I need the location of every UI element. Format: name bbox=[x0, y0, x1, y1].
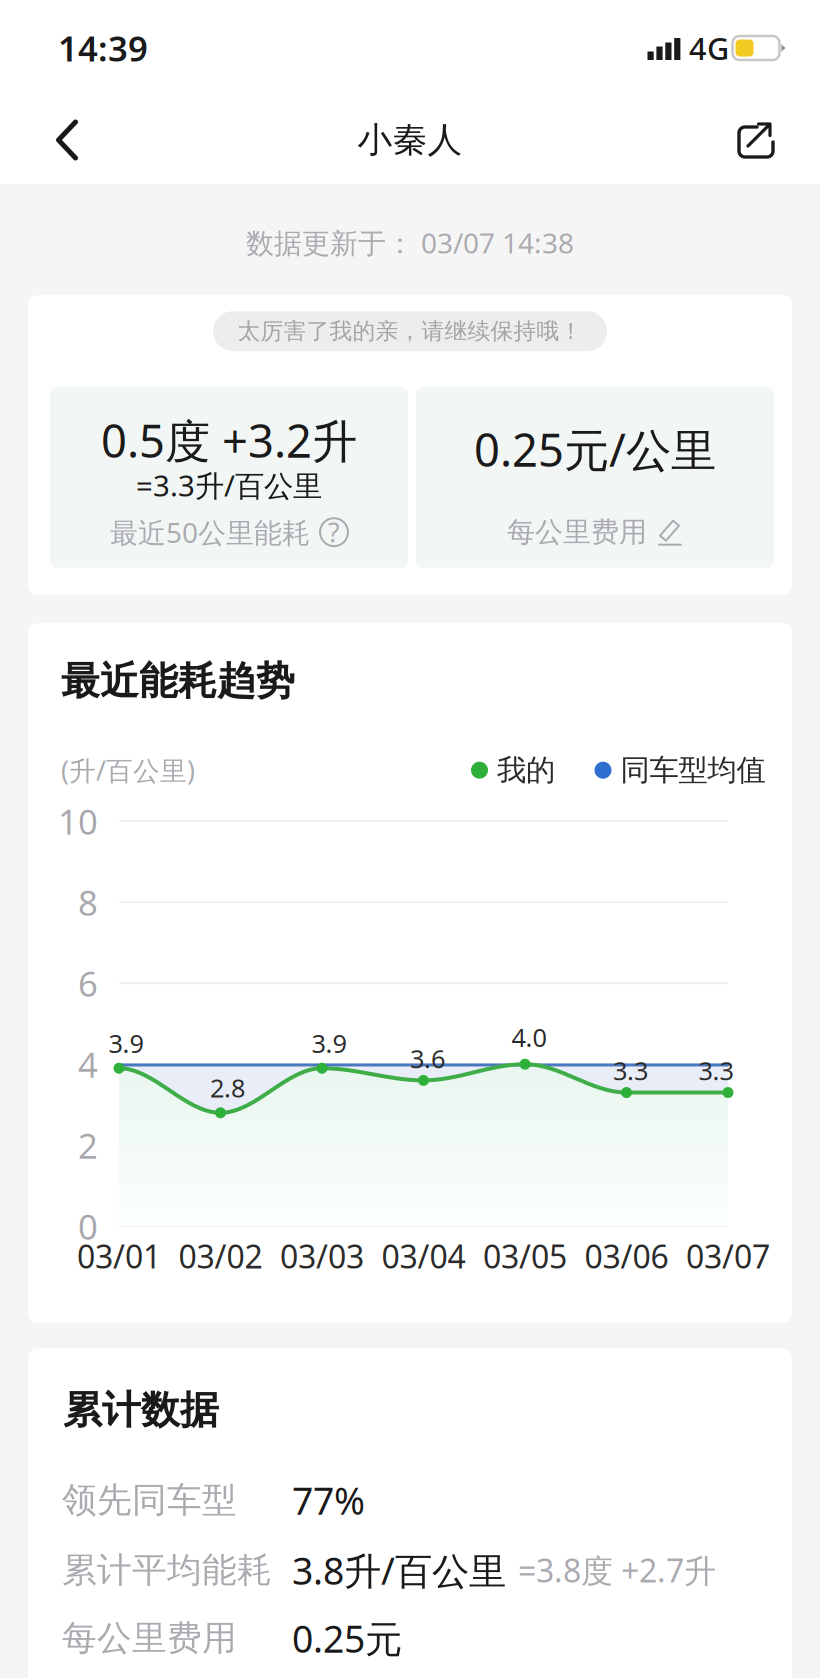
staticText: 2 bbox=[78, 1122, 98, 1168]
staticText: =3.3升/百公里 bbox=[136, 466, 322, 505]
button[interactable]: Share bbox=[0, 96, 820, 184]
staticText: 0 bbox=[78, 1203, 98, 1249]
staticText: 3.9 bbox=[108, 1026, 143, 1060]
staticText: 8 bbox=[78, 879, 98, 925]
staticText: 最近能耗趋势 bbox=[61, 657, 295, 705]
staticText: 03/07 bbox=[686, 1235, 770, 1277]
staticText: 03/01 bbox=[77, 1235, 161, 1277]
staticText: 03/04 bbox=[381, 1235, 465, 1277]
staticText: 10 bbox=[58, 798, 98, 844]
staticText: 0.5度 +3.2升 bbox=[101, 410, 357, 470]
staticText: =3.8度 +2.7升 bbox=[518, 1549, 716, 1591]
staticText: 3.9 bbox=[311, 1026, 346, 1060]
staticText: 3.8升/百公里 bbox=[292, 1545, 506, 1595]
staticText: 3.3 bbox=[613, 1054, 648, 1087]
staticText: 03/03 bbox=[280, 1235, 364, 1277]
staticText: 4.0 bbox=[511, 1020, 546, 1054]
staticText: (升/百公里) bbox=[61, 752, 195, 788]
staticText: 累计数据 bbox=[63, 1386, 219, 1434]
staticText: 最近50公里能耗 bbox=[110, 514, 310, 551]
staticText: 03/06 bbox=[584, 1235, 668, 1277]
staticText: 4G bbox=[689, 28, 729, 68]
button[interactable]: Back bbox=[0, 96, 820, 184]
staticText: ? bbox=[328, 514, 340, 550]
staticText: 0.25元/公里 bbox=[474, 419, 716, 479]
staticText: 太厉害了我的亲，请继续保持哦！ bbox=[237, 317, 582, 345]
staticText: 14:39 bbox=[58, 25, 148, 71]
staticText: 我的 bbox=[497, 752, 555, 788]
staticText: 累计平均能耗 bbox=[62, 1549, 272, 1591]
staticText: 小秦人 bbox=[357, 119, 462, 161]
staticText: 每公里费用 bbox=[62, 1617, 237, 1659]
staticText: 每公里费用 bbox=[507, 515, 647, 549]
staticText: 3.3 bbox=[698, 1054, 733, 1087]
staticText: 03/02 bbox=[178, 1235, 262, 1277]
staticText: 0.25元 bbox=[292, 1613, 402, 1663]
staticText: 4 bbox=[78, 1041, 98, 1087]
staticText: 2.8 bbox=[210, 1071, 245, 1105]
staticText: 领先同车型 bbox=[62, 1479, 237, 1521]
staticText: 6 bbox=[78, 960, 98, 1006]
staticText: 77% bbox=[292, 1475, 365, 1525]
staticText: 同车型均值 bbox=[620, 752, 765, 788]
staticText: 3.6 bbox=[410, 1042, 445, 1075]
staticText: 数据更新于： 03/07 14:38 bbox=[246, 224, 574, 261]
staticText: 03/05 bbox=[483, 1235, 567, 1277]
